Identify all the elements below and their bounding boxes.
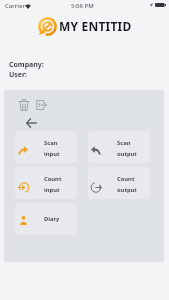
staticText: Diary	[44, 215, 60, 223]
button[interactable]: Diary	[15, 203, 77, 235]
staticText: Scan	[44, 139, 58, 147]
button[interactable]: Count	[88, 167, 150, 199]
staticText: input	[44, 186, 60, 194]
staticText: User:	[9, 70, 28, 80]
staticText: 5:06 PM	[71, 2, 94, 10]
staticText: Count	[117, 175, 135, 183]
button[interactable]: Scan	[15, 131, 77, 163]
staticText: input	[44, 150, 60, 158]
button[interactable]: Delete	[15, 96, 32, 113]
button[interactable]: Count	[15, 167, 77, 199]
staticText: Scan	[117, 139, 131, 147]
button[interactable]: Export	[33, 96, 50, 113]
button[interactable]: Scan	[88, 131, 150, 163]
button[interactable]: Back	[23, 114, 40, 131]
staticText: MY ENTITID	[59, 18, 132, 34]
staticText: Carrier	[5, 2, 25, 10]
staticText: output	[117, 186, 137, 194]
staticText: output	[117, 150, 137, 158]
staticText: Count	[44, 175, 62, 183]
staticText: Company:	[9, 60, 44, 70]
